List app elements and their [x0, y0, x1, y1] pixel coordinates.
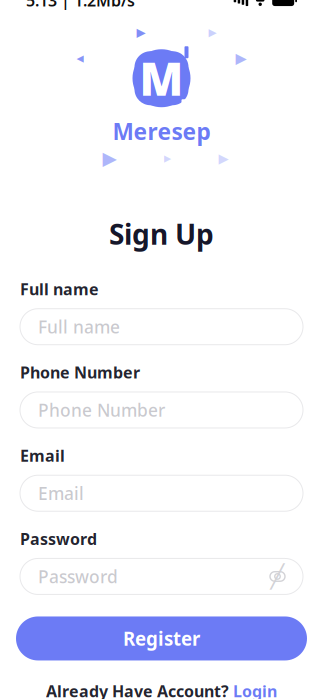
button[interactable]: Password	[20, 558, 303, 594]
staticText: Meresep	[112, 116, 210, 146]
staticText: ▶	[136, 25, 145, 39]
staticText: Sign Up	[109, 215, 214, 252]
staticText: Password	[38, 565, 118, 588]
button[interactable]: Phone Number	[20, 392, 303, 428]
staticText: Email	[20, 445, 65, 466]
staticText: ◀	[76, 53, 83, 64]
staticText: ▶	[208, 26, 216, 38]
staticText: Phone Number	[20, 362, 140, 383]
staticText: 5:13 | 1.2Mb/s	[26, 0, 135, 11]
staticText: Phone Number	[38, 398, 165, 421]
staticText: ╱	[270, 564, 284, 589]
button[interactable]: Register	[16, 616, 307, 660]
staticText: Password	[20, 528, 97, 549]
staticText: Login	[233, 680, 277, 699]
button[interactable]: Email	[20, 475, 303, 511]
staticText: Full name	[20, 278, 99, 300]
staticText: Register	[123, 626, 200, 651]
button[interactable]: Full name	[20, 309, 303, 345]
staticText: ▶	[218, 151, 228, 166]
staticText: M	[139, 48, 183, 108]
staticText: Email	[38, 482, 84, 505]
button[interactable]: Already Have Account?	[36, 674, 287, 699]
staticText: ▶	[164, 153, 171, 164]
staticText: Already Have Account?	[46, 680, 229, 699]
staticText: ▶	[102, 148, 116, 169]
staticText: ▶	[235, 50, 246, 67]
staticText: Full name	[38, 315, 120, 338]
